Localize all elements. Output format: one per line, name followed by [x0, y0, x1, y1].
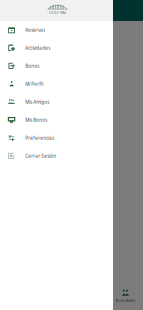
button[interactable]: Preferencias — [0, 129, 113, 147]
staticText: Cerrar Sesión — [25, 153, 56, 159]
button[interactable]: Mi Perfil — [0, 75, 113, 93]
staticText: GOLF RAZ — [49, 10, 66, 15]
staticText: Bonos — [25, 63, 39, 69]
button[interactable]: Actividades — [0, 39, 113, 57]
button[interactable]: Mis Bonos — [0, 111, 113, 129]
button[interactable]: Mis Amigos — [0, 93, 113, 111]
staticText: Mi Perfil — [25, 81, 43, 87]
button[interactable]: Bonos — [0, 57, 113, 75]
staticText: Mis Bonos — [25, 117, 47, 123]
staticText: Mis Amigos — [25, 99, 49, 105]
staticText: Actividades — [25, 45, 50, 51]
button[interactable]: Cerrar Sesión — [0, 147, 113, 165]
staticText: Reservas — [25, 27, 45, 33]
staticText: Actividades — [115, 298, 135, 303]
button[interactable]: Reservas — [0, 21, 113, 39]
staticText: Preferencias — [25, 135, 54, 141]
